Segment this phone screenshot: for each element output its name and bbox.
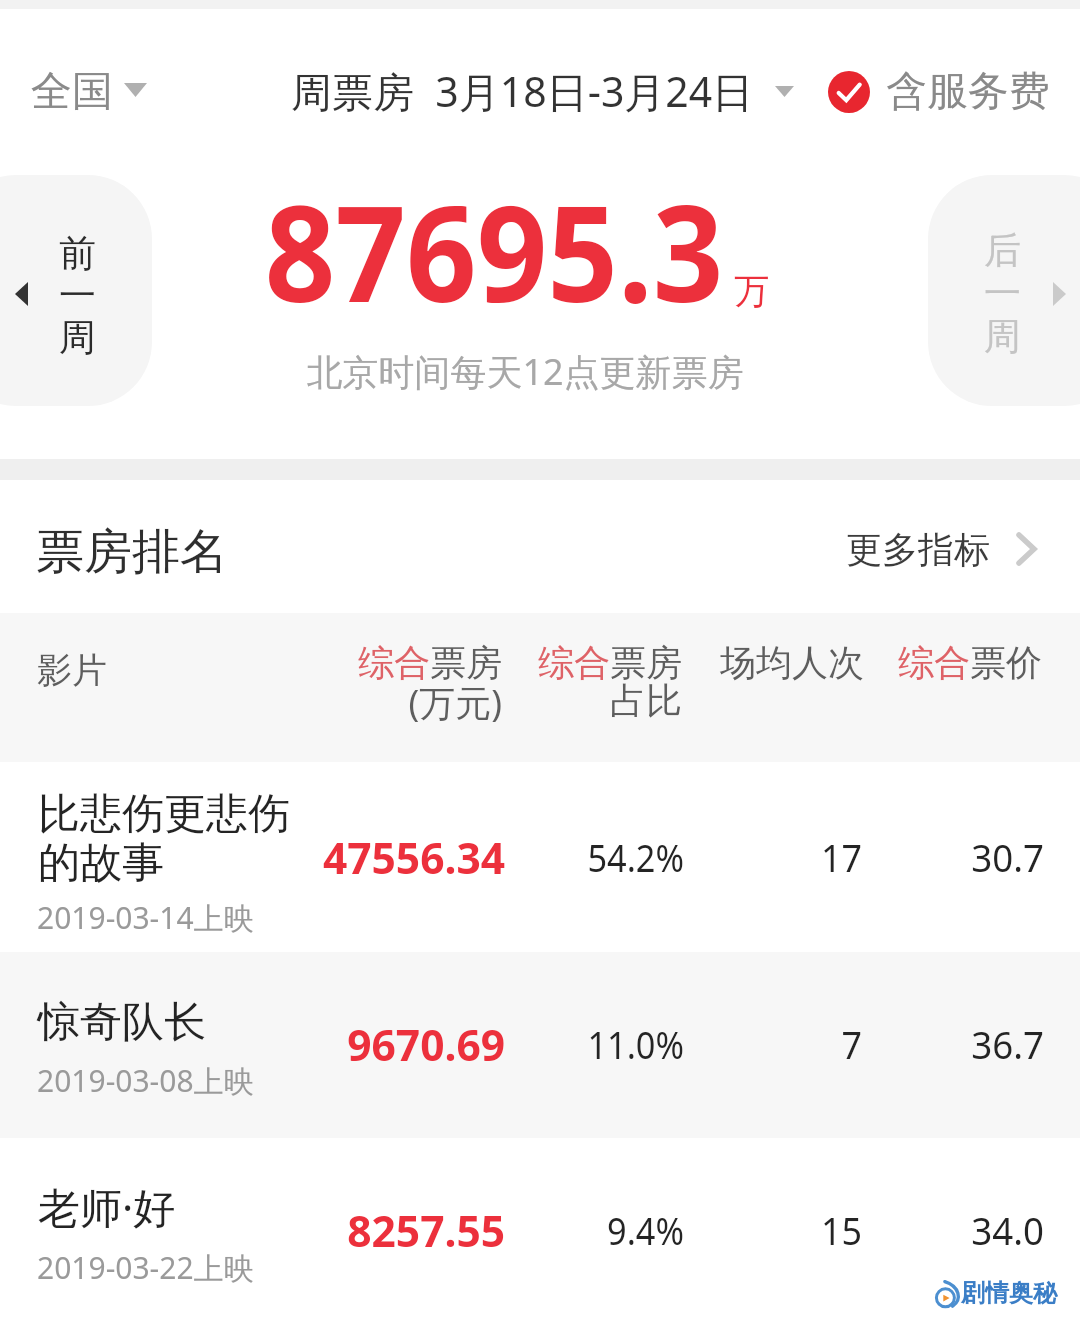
- staticText: 54.2%: [473, 830, 684, 883]
- staticText: 的故事: [38, 837, 164, 890]
- button[interactable]: 比悲伤更悲伤: [0, 762, 1080, 952]
- staticText: 17: [641, 830, 862, 883]
- staticText: 87695.3: [260, 161, 728, 341]
- staticText: 更多指标: [846, 527, 990, 572]
- staticText: 剧情奥秘: [961, 1278, 1057, 1308]
- staticText: 36.7: [818, 1017, 1044, 1070]
- staticText: 周: [984, 313, 1021, 360]
- staticText: 含服务费: [886, 66, 1050, 118]
- staticText: 30.7: [818, 830, 1044, 883]
- staticText: 11.0%: [473, 1017, 684, 1070]
- staticText: 9.4%: [473, 1203, 684, 1256]
- staticText: 34.0: [818, 1203, 1044, 1256]
- staticText: 2019-03-22上映: [37, 1247, 254, 1288]
- staticText: 影片: [37, 648, 107, 692]
- button[interactable]: 全国: [31, 66, 147, 118]
- staticText: 票房排名: [36, 522, 228, 582]
- staticText: 一: [984, 270, 1021, 317]
- staticText: 占比: [442, 678, 682, 723]
- staticText: 惊奇队长: [38, 996, 206, 1049]
- staticText: 9670.69: [265, 1016, 505, 1074]
- staticText: 周票房 3月18日-3月24日: [291, 63, 754, 119]
- staticText: 综合票价: [802, 640, 1042, 685]
- button[interactable]: 更多指标: [846, 527, 1038, 572]
- staticText: 全国: [31, 66, 113, 118]
- staticText: 后: [984, 227, 1021, 274]
- button[interactable]: 含服务费 已选中: [828, 66, 1050, 118]
- staticText: 2019-03-14上映: [37, 897, 254, 938]
- staticText: 7: [641, 1017, 862, 1070]
- staticText: 北京时间每天12点更新票房: [255, 347, 795, 396]
- staticText: 万: [734, 269, 769, 313]
- staticText: (万元): [262, 678, 502, 727]
- button[interactable]: 惊奇队长: [0, 952, 1080, 1138]
- button[interactable]: 老师·好: [0, 1138, 1080, 1323]
- staticText: 2019-03-08上映: [37, 1060, 254, 1101]
- staticText: 一: [59, 272, 96, 319]
- staticText: 老师·好: [38, 1178, 176, 1235]
- other: 含服务费 已选中: [828, 71, 870, 113]
- staticText: 前: [59, 230, 96, 277]
- staticText: 场均人次: [624, 640, 864, 685]
- staticText: 综合票房: [442, 640, 682, 685]
- staticText: 综合票房: [262, 640, 502, 685]
- staticText: 15: [641, 1203, 862, 1256]
- button[interactable]: 后: [928, 175, 1080, 406]
- staticText: 8257.55: [265, 1202, 505, 1260]
- button[interactable]: 周票房 3月18日-3月24日: [291, 63, 794, 119]
- staticText: 47556.34: [265, 829, 505, 887]
- button[interactable]: 前: [0, 175, 152, 406]
- staticText: 周: [59, 314, 96, 361]
- staticText: 比悲伤更悲伤: [38, 788, 290, 841]
